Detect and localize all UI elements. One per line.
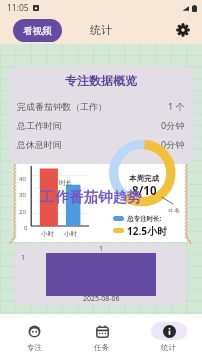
- staticText: 12.5小时: [127, 224, 167, 237]
- staticText: 0: [24, 224, 28, 232]
- staticText: 总专注时长:: [127, 214, 162, 223]
- staticText: 0分钟: [161, 138, 185, 150]
- staticText: 2025-08-06: [83, 294, 120, 304]
- staticText: 完成番茄钟数（工作）: [17, 101, 107, 112]
- staticText: 任务: [168, 207, 180, 215]
- button[interactable]: 任务: [68, 314, 135, 359]
- button[interactable]: Settings: [173, 20, 193, 40]
- staticText: 时长: [59, 179, 72, 187]
- staticText: 总工作时间: [17, 120, 62, 131]
- staticText: 本周完成: [129, 174, 159, 183]
- staticText: 30: [19, 191, 26, 199]
- staticText: 1: [99, 244, 104, 254]
- staticText: 专注数据概览: [9, 73, 193, 88]
- staticText: 统计: [161, 343, 176, 352]
- staticText: 总休息时间: [17, 139, 62, 150]
- staticText: 20: [19, 208, 26, 216]
- staticText: 0分钟: [161, 119, 185, 131]
- staticText: 小时: [41, 230, 54, 238]
- staticText: 统计: [90, 23, 112, 37]
- staticText: 专注: [27, 343, 42, 352]
- staticText: 看视频: [23, 25, 52, 37]
- staticText: 任务: [94, 343, 109, 352]
- button[interactable]: 专注: [0, 314, 68, 359]
- staticText: 40: [19, 175, 26, 183]
- staticText: 小时: [64, 230, 77, 238]
- button[interactable]: 看视频: [13, 19, 62, 42]
- staticText: 8/10: [132, 183, 157, 199]
- staticText: 工作番茄钟趋势: [40, 188, 142, 206]
- staticText: 1: [21, 253, 26, 263]
- staticText: 1 个: [168, 100, 185, 112]
- staticText: 11:05: [7, 2, 29, 14]
- button[interactable]: 统计: [135, 314, 202, 359]
